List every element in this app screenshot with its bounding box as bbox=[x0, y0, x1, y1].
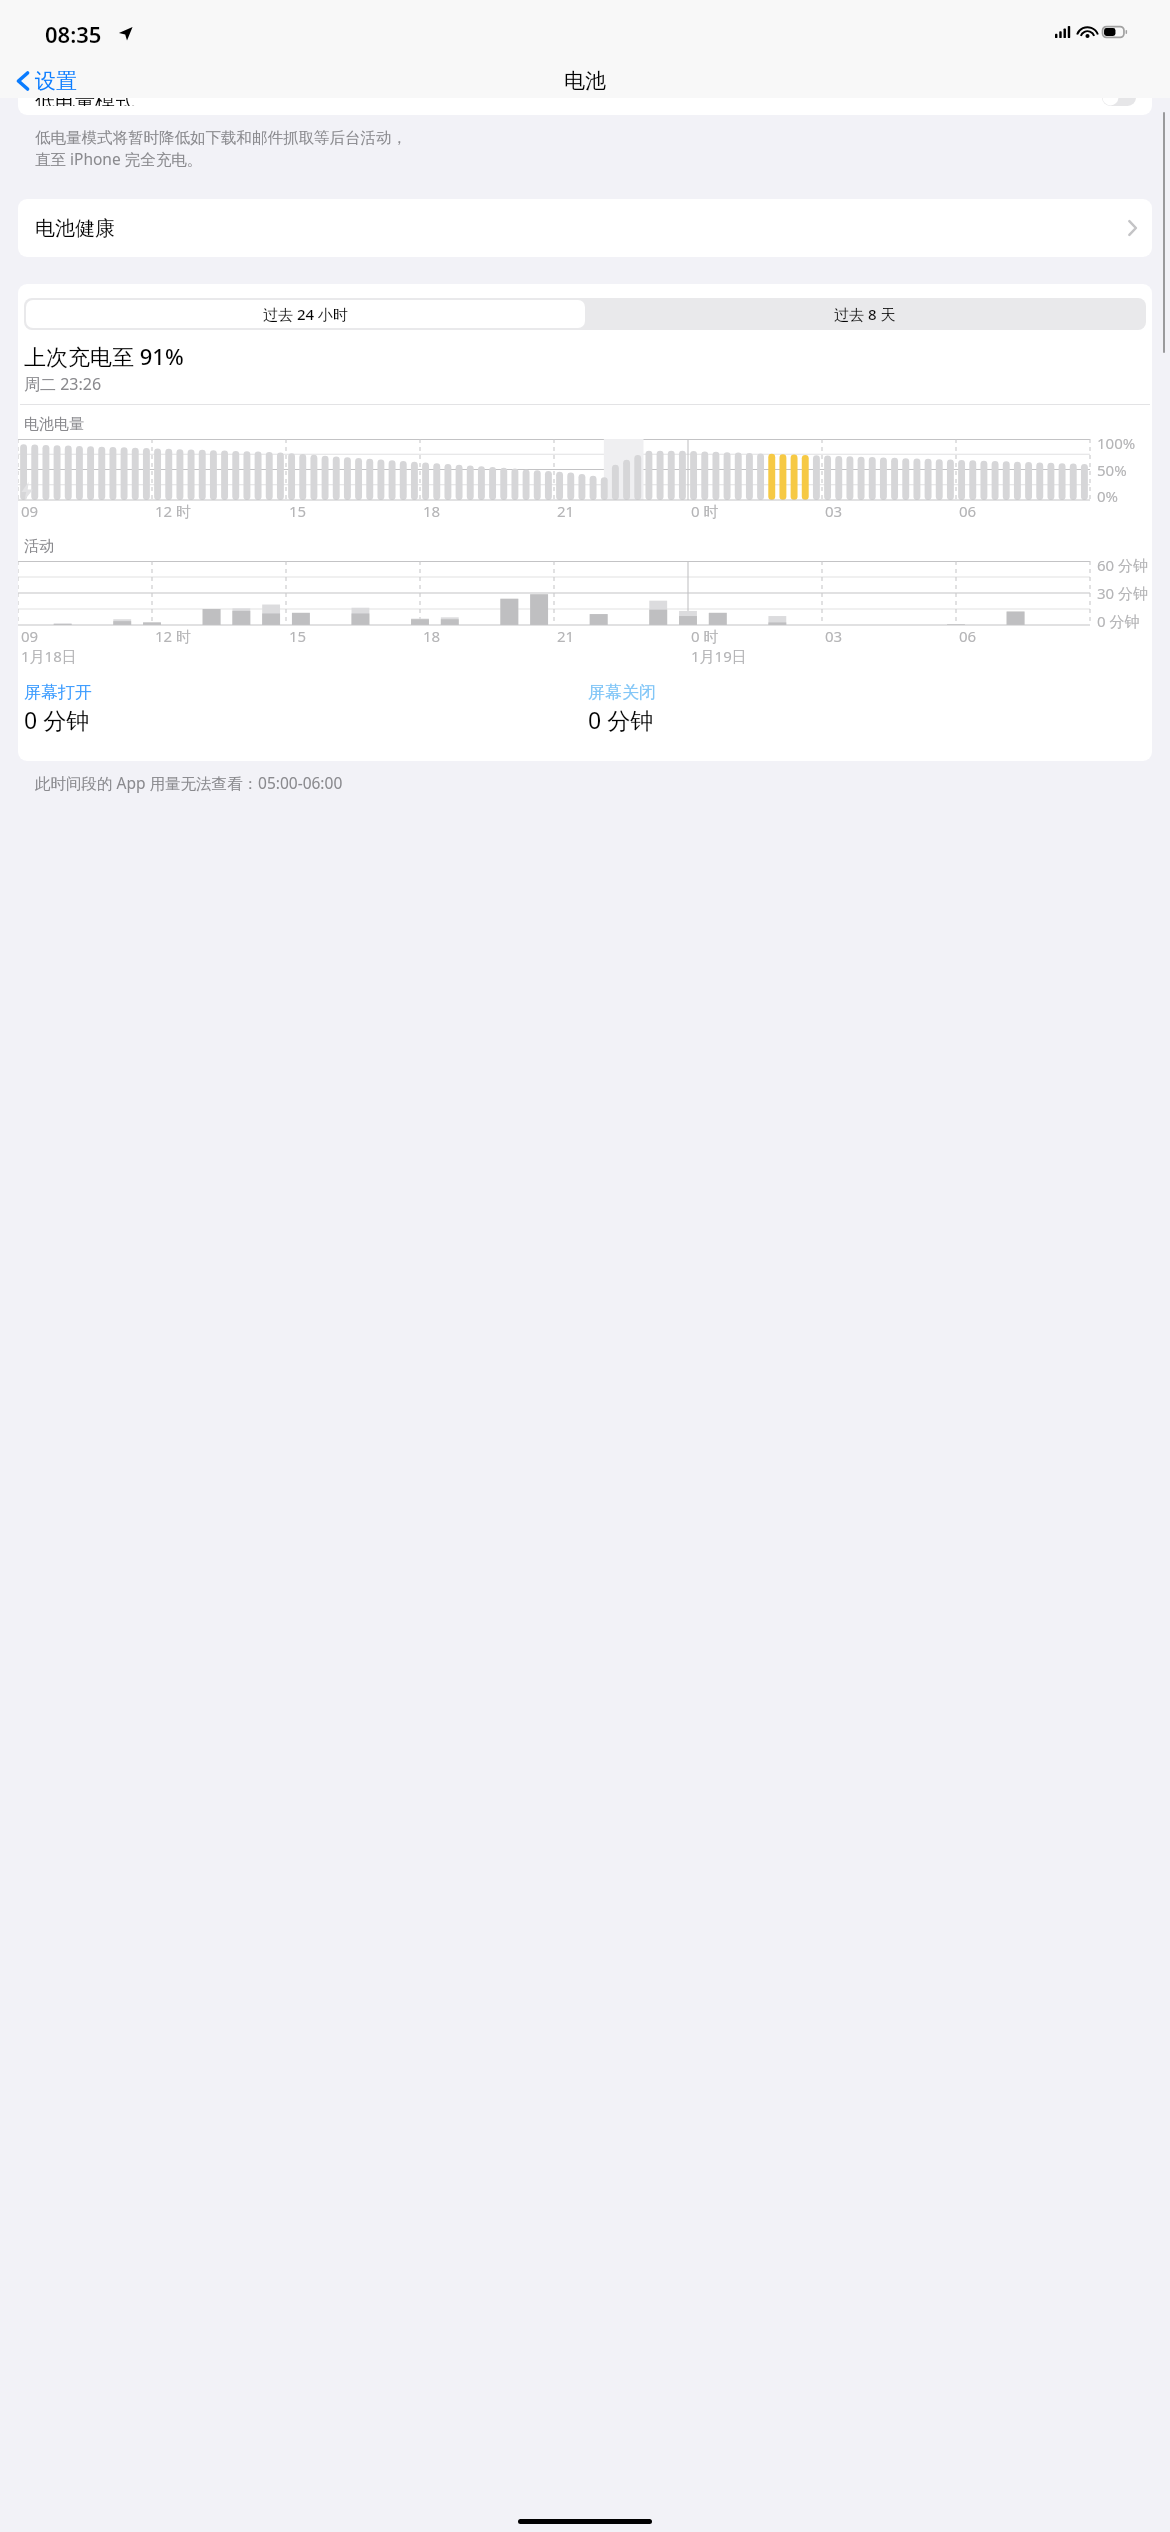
staticText: 50% bbox=[1097, 460, 1127, 480]
staticText: 电池健康 bbox=[35, 216, 115, 241]
staticText: 过去 24 小时 bbox=[263, 304, 348, 324]
staticText: 电池电量 bbox=[24, 415, 84, 434]
staticText: 08:35 bbox=[45, 19, 102, 49]
staticText: 12 时 bbox=[155, 501, 192, 521]
button[interactable]: 过去 24 小时 bbox=[26, 300, 585, 328]
staticText: 0 时 bbox=[691, 501, 719, 521]
staticText: 03 bbox=[825, 501, 843, 521]
staticText: 12 时 bbox=[155, 626, 192, 646]
button[interactable]: 电池健康 bbox=[18, 199, 1152, 257]
staticText: 活动 bbox=[24, 537, 54, 556]
staticText: 设置 bbox=[35, 68, 77, 94]
staticText: 过去 8 天 bbox=[834, 304, 896, 324]
staticText: 屏幕打开 bbox=[24, 682, 92, 703]
button[interactable]: 设置 bbox=[12, 66, 82, 96]
staticText: 03 bbox=[825, 626, 843, 646]
button[interactable]: 过去 8 天 bbox=[585, 300, 1144, 328]
staticText: 06 bbox=[959, 501, 977, 521]
staticText: 0% bbox=[1097, 486, 1119, 506]
staticText: 上次充电至 91% bbox=[24, 341, 184, 371]
button[interactable]: 低电量模式 bbox=[18, 98, 1152, 115]
staticText: 15 bbox=[289, 501, 307, 521]
staticText: 09 bbox=[21, 626, 39, 646]
staticText: 21 bbox=[557, 501, 575, 521]
staticText: 0 分钟 bbox=[24, 704, 90, 735]
staticText: 15 bbox=[289, 626, 307, 646]
staticText: 电池 bbox=[564, 68, 606, 94]
staticText: 屏幕关闭 bbox=[588, 682, 656, 703]
staticText: 0 时 bbox=[691, 626, 719, 646]
staticText: 0 分钟 bbox=[588, 704, 654, 735]
staticText: 09 bbox=[21, 501, 39, 521]
staticText: 1月18日 bbox=[21, 646, 77, 666]
staticText: 100% bbox=[1097, 433, 1136, 453]
staticText: 18 bbox=[423, 626, 441, 646]
staticText: 30 分钟 bbox=[1097, 583, 1149, 603]
staticText: 1月19日 bbox=[691, 646, 747, 666]
staticText: 06 bbox=[959, 626, 977, 646]
staticText: 18 bbox=[423, 501, 441, 521]
staticText: 21 bbox=[557, 626, 575, 646]
staticText: 此时间段的 App 用量无法查看：05:00-06:00 bbox=[35, 772, 343, 793]
staticText: 60 分钟 bbox=[1097, 555, 1149, 575]
staticText: 周二 23:26 bbox=[24, 373, 102, 395]
staticText: 低电量模式 bbox=[35, 98, 135, 106]
staticText: 0 分钟 bbox=[1097, 611, 1140, 631]
staticText: 低电量模式将暂时降低如下载和邮件抓取等后台活动， 直至 iPhone 完全充电。 bbox=[35, 128, 407, 170]
